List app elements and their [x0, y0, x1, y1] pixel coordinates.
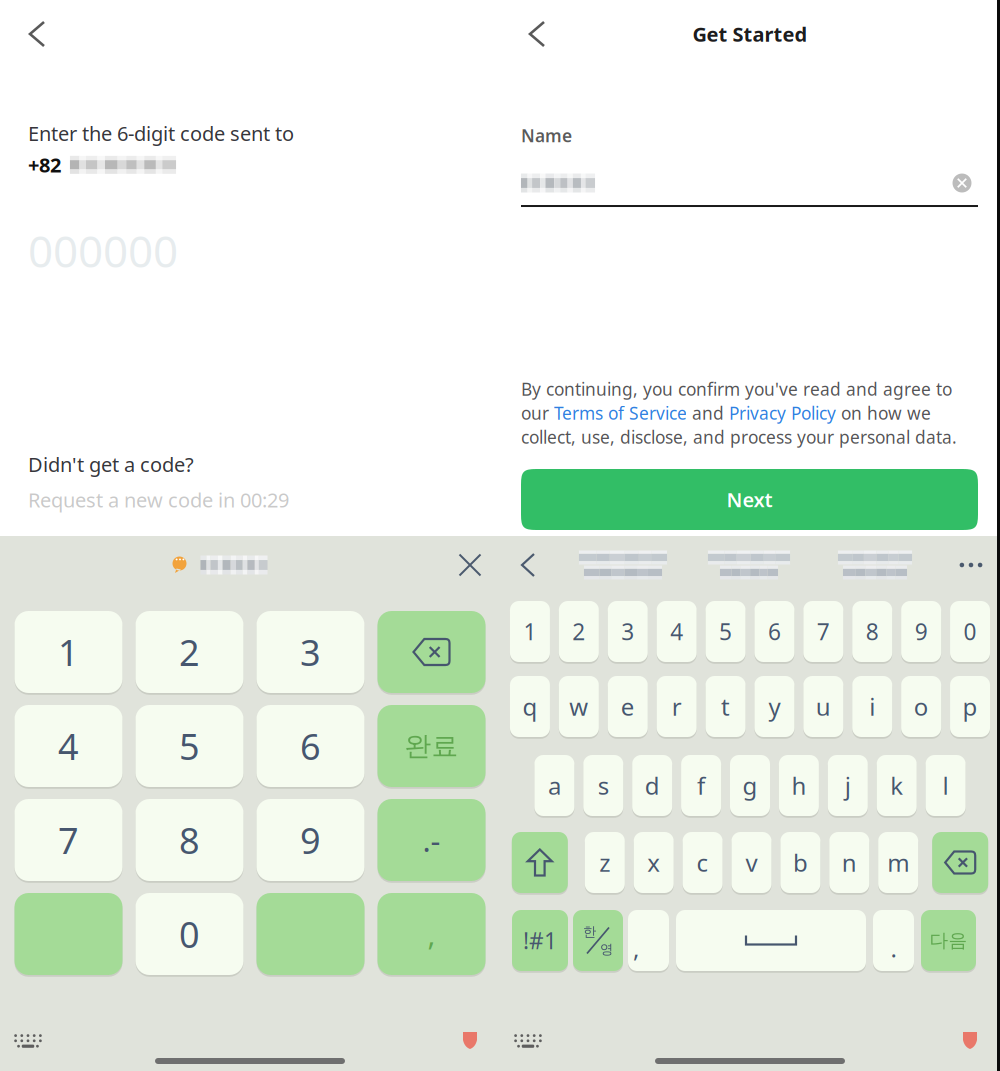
- button[interactable]: v: [731, 832, 771, 893]
- button[interactable]: 5: [705, 601, 745, 662]
- button[interactable]: Next: [521, 469, 978, 530]
- button[interactable]: r: [657, 676, 697, 737]
- staticText: t: [721, 691, 730, 722]
- button[interactable]: 3: [608, 601, 648, 662]
- button[interactable]: [377, 611, 485, 693]
- button[interactable]: !#1: [512, 910, 568, 971]
- button[interactable]: e: [608, 676, 648, 737]
- button[interactable]: g: [730, 755, 770, 816]
- button[interactable]: [256, 893, 364, 975]
- staticText: w: [569, 691, 588, 722]
- button[interactable]: [932, 832, 988, 893]
- button[interactable]: 8: [135, 799, 243, 881]
- staticText: 2: [572, 616, 585, 646]
- button[interactable]: l: [926, 755, 966, 816]
- button[interactable]: 1: [510, 601, 550, 662]
- button[interactable]: Privacy Policy: [729, 401, 836, 424]
- button[interactable]: Privacy: [948, 993, 992, 1049]
- button[interactable]: 9: [256, 799, 364, 881]
- button[interactable]: .-: [377, 799, 485, 881]
- staticText: 8: [866, 616, 879, 646]
- button[interactable]: n: [829, 832, 869, 893]
- staticText: l: [943, 770, 949, 801]
- button[interactable]: 0: [950, 601, 990, 662]
- staticText: Next: [726, 486, 772, 513]
- button[interactable]: 8: [852, 601, 892, 662]
- staticText: 9: [300, 816, 321, 864]
- button[interactable]: a: [534, 755, 574, 816]
- button[interactable]: Back: [15, 6, 59, 62]
- staticText: m: [887, 847, 909, 878]
- staticText: 7: [817, 616, 830, 646]
- button[interactable]: 3: [256, 611, 364, 693]
- button[interactable]: s: [583, 755, 623, 816]
- button[interactable]: [816, 545, 934, 585]
- staticText: 6: [768, 616, 781, 646]
- button[interactable]: 6: [256, 705, 364, 787]
- button[interactable]: y: [754, 676, 794, 737]
- staticText: 000000: [28, 221, 178, 279]
- staticText: on how we: [836, 401, 931, 424]
- button[interactable]: q: [510, 676, 550, 737]
- button[interactable]: ,: [628, 910, 669, 971]
- button[interactable]: z: [585, 832, 625, 893]
- button[interactable]: w: [559, 676, 599, 737]
- staticText: 4: [670, 616, 683, 646]
- button[interactable]: Previous: [500, 543, 556, 587]
- button[interactable]: d: [632, 755, 672, 816]
- button[interactable]: 다음: [921, 910, 976, 971]
- button[interactable]: [690, 545, 808, 585]
- staticText: 5: [719, 616, 732, 646]
- button[interactable]: [512, 832, 568, 893]
- button[interactable]: h: [779, 755, 819, 816]
- button[interactable]: [564, 545, 682, 585]
- button[interactable]: Privacy: [448, 993, 492, 1049]
- staticText: Didn't get a code?: [28, 451, 194, 477]
- button[interactable]: [676, 910, 866, 971]
- button[interactable]: 2: [559, 601, 599, 662]
- button[interactable]: c: [683, 832, 723, 893]
- button[interactable]: ,: [377, 893, 485, 975]
- button[interactable]: 9: [901, 601, 941, 662]
- staticText: !#1: [523, 925, 557, 955]
- staticText: f: [697, 770, 705, 801]
- button[interactable]: Terms of Service: [554, 401, 687, 424]
- button[interactable]: 2: [135, 611, 243, 693]
- button[interactable]: 4: [14, 705, 122, 787]
- staticText: 5: [179, 722, 200, 770]
- button[interactable]: 4: [657, 601, 697, 662]
- staticText: 0: [963, 616, 976, 646]
- button[interactable]: 7: [14, 799, 122, 881]
- button[interactable]: 7: [803, 601, 843, 662]
- staticText: r: [672, 691, 682, 722]
- button[interactable]: i: [852, 676, 892, 737]
- button[interactable]: Didn't get a code?: [28, 451, 194, 477]
- button[interactable]: Back: [515, 6, 559, 62]
- button[interactable]: p: [950, 676, 990, 737]
- button[interactable]: 0: [135, 893, 243, 975]
- button[interactable]: t: [705, 676, 745, 737]
- button[interactable]: [14, 893, 122, 975]
- button[interactable]: 완료: [377, 705, 485, 787]
- button[interactable]: m: [878, 832, 918, 893]
- button[interactable]: Close: [440, 543, 500, 587]
- button[interactable]: 6: [754, 601, 794, 662]
- button[interactable]: Dismiss keyboard: [502, 993, 554, 1049]
- button[interactable]: k: [877, 755, 917, 816]
- button[interactable]: Clear text: [945, 166, 979, 200]
- button[interactable]: .: [873, 910, 914, 971]
- button[interactable]: b: [780, 832, 820, 893]
- button[interactable]: 5: [135, 705, 243, 787]
- staticText: 0: [179, 910, 200, 958]
- button[interactable]: x: [634, 832, 674, 893]
- button[interactable]: f: [681, 755, 721, 816]
- button[interactable]: u: [803, 676, 843, 737]
- button[interactable]: 한: [573, 910, 623, 971]
- button[interactable]: j: [828, 755, 868, 816]
- button[interactable]: o: [901, 676, 941, 737]
- staticText: Privacy Policy: [729, 401, 836, 424]
- staticText: Enter the 6-digit code sent to: [28, 120, 294, 147]
- button[interactable]: 1: [14, 611, 122, 693]
- button[interactable]: Dismiss keyboard: [2, 993, 54, 1049]
- button[interactable]: More: [942, 543, 1000, 587]
